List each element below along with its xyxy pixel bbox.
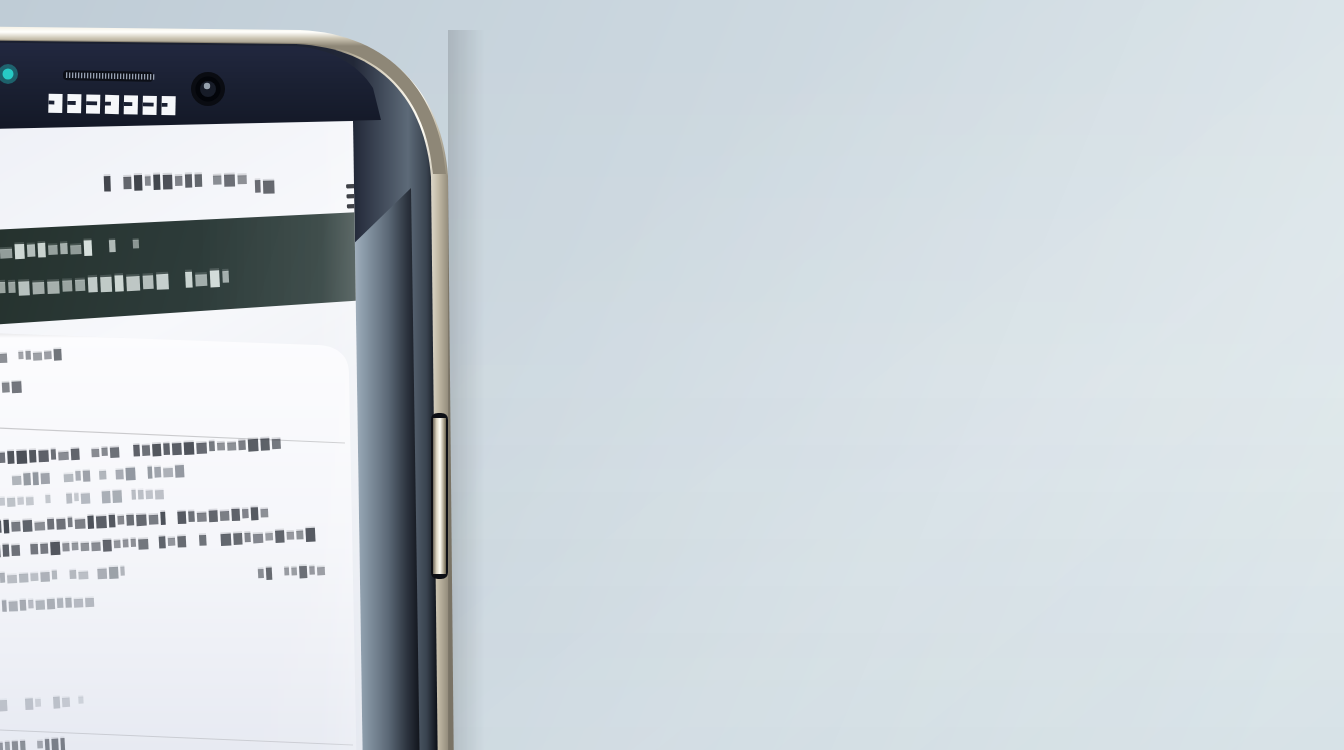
button[interactable] (0, 212, 360, 332)
button[interactable]: Power button (424, 410, 450, 580)
button[interactable] (0, 334, 352, 432)
button[interactable] (0, 155, 260, 213)
button[interactable]: Menu (336, 178, 376, 218)
button[interactable] (0, 436, 352, 626)
